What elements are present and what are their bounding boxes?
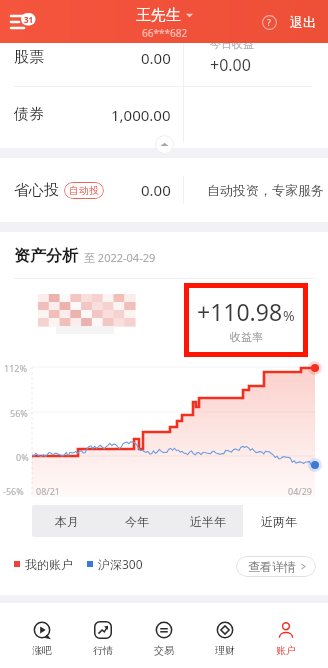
staticText: 0.00 (141, 180, 171, 200)
staticText: 自动投资，专家服务 (207, 182, 324, 198)
button[interactable]: Collapse (155, 135, 174, 154)
button[interactable]: 账户 (255, 603, 316, 668)
staticText: 本月 (55, 514, 79, 529)
staticText: 账户 (276, 644, 296, 657)
staticText: 资产分析 (14, 246, 78, 266)
staticText: 近两年 (261, 514, 297, 529)
button[interactable]: 近两年 (243, 505, 314, 537)
staticText: ? (267, 16, 271, 28)
button[interactable]: 理财 (194, 603, 255, 668)
staticText: 理财 (215, 644, 235, 657)
staticText: 08/21 (36, 485, 60, 497)
button[interactable]: 股票 (0, 29, 183, 86)
staticText: 04/29 (288, 485, 312, 497)
button[interactable]: 涨吧 (12, 603, 72, 668)
staticText: -56% (3, 485, 24, 497)
staticText: 近半年 (190, 514, 226, 529)
staticText: 行情 (93, 644, 113, 657)
staticText: 1,000.00 (111, 105, 171, 125)
staticText: % (283, 306, 295, 325)
button[interactable]: 债券 (0, 86, 183, 143)
button[interactable]: 查看详情 (236, 556, 316, 577)
staticText: 我的账户 (25, 557, 73, 572)
staticText: 涨吧 (32, 644, 52, 657)
staticText: +110.98 (197, 296, 283, 327)
staticText: 56% (10, 407, 28, 419)
staticText: 今日收益 (210, 37, 254, 51)
staticText: +0.00 (210, 54, 251, 76)
staticText: 0.00 (141, 48, 171, 68)
staticText: 至 2022-04-29 (84, 250, 156, 265)
button[interactable]: 本月 (32, 505, 102, 537)
staticText: 债券 (14, 105, 44, 124)
staticText: 王先生 (136, 6, 181, 25)
staticText: 交易 (154, 644, 174, 657)
staticText: 自动投 (69, 184, 99, 197)
button[interactable]: 行情 (72, 603, 133, 668)
button[interactable]: Help (254, 7, 284, 37)
button[interactable]: 省心投 (0, 158, 328, 222)
staticText: 0% (16, 451, 29, 463)
staticText: 沪深300 (98, 556, 143, 572)
staticText: 112% (4, 362, 27, 374)
button[interactable]: 今年 (102, 505, 172, 537)
staticText: 查看详情 (248, 559, 296, 574)
button[interactable]: 交易 (133, 603, 194, 668)
staticText: 股票 (14, 48, 44, 67)
button[interactable]: 退出 (284, 8, 322, 36)
button[interactable]: 近半年 (172, 505, 243, 537)
staticText: 31 (24, 14, 34, 25)
staticText: 今年 (125, 514, 149, 529)
staticText: 省心投 (14, 181, 59, 200)
staticText: 66***682 (142, 26, 188, 40)
staticText: 退出 (290, 14, 316, 30)
button[interactable]: Menu (0, 0, 46, 43)
staticText: 收益率 (230, 330, 263, 344)
